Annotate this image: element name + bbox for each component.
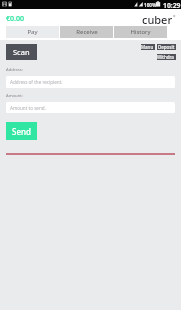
staticText: cuber	[142, 12, 173, 27]
staticText: Manual	[141, 44, 155, 50]
staticText: °	[173, 13, 176, 21]
button[interactable]: Pay	[6, 26, 59, 38]
button[interactable]: Send	[6, 122, 37, 140]
staticText: 10:29	[163, 1, 181, 10]
staticText: Pay	[27, 28, 38, 36]
staticText: 100%	[144, 2, 157, 8]
staticText: Address of the recipient.	[10, 79, 63, 85]
button[interactable]: Address of the recipient.	[6, 76, 175, 88]
staticText: Withdraw	[157, 54, 176, 60]
button[interactable]: Scan	[6, 44, 37, 60]
button[interactable]: History	[114, 26, 167, 38]
staticText: Send	[12, 126, 31, 137]
staticText: History	[130, 28, 151, 36]
staticText: Deposit	[158, 44, 175, 50]
button[interactable]: Manual	[141, 44, 155, 50]
button[interactable]: Deposit	[157, 44, 176, 50]
staticText: Scan	[13, 47, 30, 57]
button[interactable]: Withdraw	[157, 54, 176, 60]
staticText: Address:	[6, 67, 23, 73]
staticText: €0.00	[6, 14, 24, 24]
staticText: Amount to send.	[10, 105, 46, 111]
staticText: Amount:	[6, 93, 23, 99]
staticText: Receive	[76, 28, 98, 36]
button[interactable]: Receive	[60, 26, 113, 38]
button[interactable]: Amount to send.	[6, 102, 175, 113]
